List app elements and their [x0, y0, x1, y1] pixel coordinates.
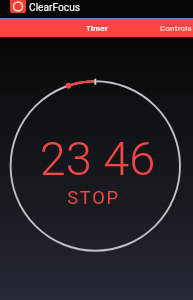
- staticText: ClearFocus: [29, 2, 81, 14]
- staticText: Timer: [86, 24, 108, 33]
- staticText: Controls: [160, 24, 192, 33]
- other: App icon: [10, 0, 26, 13]
- staticText: STOP: [0, 187, 190, 208]
- button[interactable]: Controls: [135, 20, 193, 37]
- button[interactable]: Timer: [56, 20, 137, 37]
- staticText: 23 46: [1, 131, 193, 186]
